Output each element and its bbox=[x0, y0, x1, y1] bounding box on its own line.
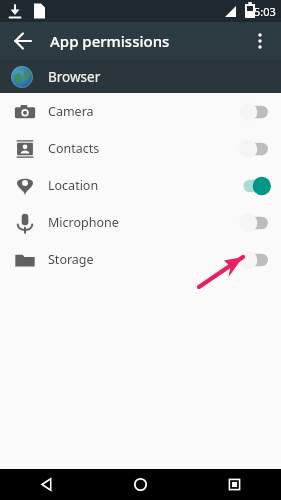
staticText: Storage bbox=[48, 251, 229, 268]
staticText: Camera bbox=[48, 103, 229, 120]
staticText: App permissions bbox=[50, 31, 170, 51]
button[interactable]: Microphone permission toggle bbox=[229, 204, 281, 241]
button[interactable]: Contacts bbox=[0, 130, 281, 167]
button[interactable]: Camera bbox=[0, 93, 281, 130]
button[interactable]: Camera permission toggle bbox=[229, 93, 281, 130]
staticText: 5:03 bbox=[254, 4, 276, 19]
button[interactable]: Back bbox=[0, 469, 93, 500]
button[interactable]: Back bbox=[6, 24, 40, 58]
button[interactable]: Home bbox=[93, 469, 187, 500]
button[interactable]: Storage bbox=[0, 241, 281, 278]
button[interactable]: More options bbox=[243, 24, 277, 58]
button[interactable]: Contacts permission toggle bbox=[229, 130, 281, 167]
button[interactable]: Location bbox=[0, 167, 281, 204]
button[interactable]: Microphone bbox=[0, 204, 281, 241]
staticText: Contacts bbox=[48, 140, 229, 157]
button[interactable]: Location permission toggle bbox=[229, 167, 281, 204]
staticText: Microphone bbox=[48, 214, 229, 231]
staticText: Location bbox=[48, 177, 229, 194]
button[interactable]: Storage permission toggle bbox=[229, 241, 281, 278]
staticText: Browser bbox=[48, 68, 101, 86]
button[interactable]: Recent apps bbox=[187, 469, 281, 500]
button[interactable]: Browser bbox=[0, 60, 281, 93]
